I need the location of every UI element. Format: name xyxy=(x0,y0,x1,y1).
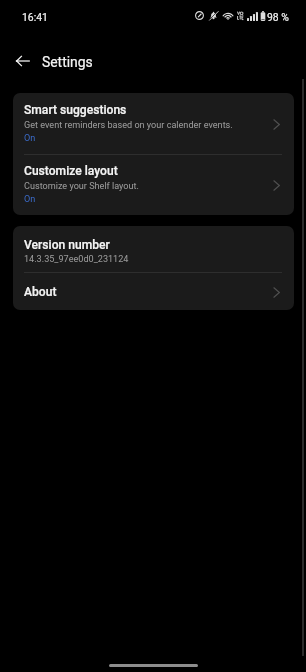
staticText: Smart suggestions xyxy=(24,103,127,117)
staticText: On xyxy=(24,194,36,205)
button[interactable]: Customize layout xyxy=(13,155,294,215)
staticText: 16:41 xyxy=(22,11,48,23)
staticText: Settings xyxy=(42,54,93,70)
staticText: Version number xyxy=(24,238,110,252)
staticText: Customize layout xyxy=(24,164,118,178)
staticText: About xyxy=(24,285,57,299)
button[interactable]: Smart suggestions xyxy=(13,93,294,155)
staticText: Customize your Shelf layout. xyxy=(24,181,139,192)
staticText: 14.3.35_97ee0d0_231124 xyxy=(24,254,129,265)
staticText: 98 % xyxy=(267,11,289,23)
button[interactable]: About xyxy=(13,273,294,310)
staticText: Get event reminders based on your calend… xyxy=(24,120,233,131)
staticText: On xyxy=(24,133,36,144)
button[interactable]: Back xyxy=(4,43,40,79)
